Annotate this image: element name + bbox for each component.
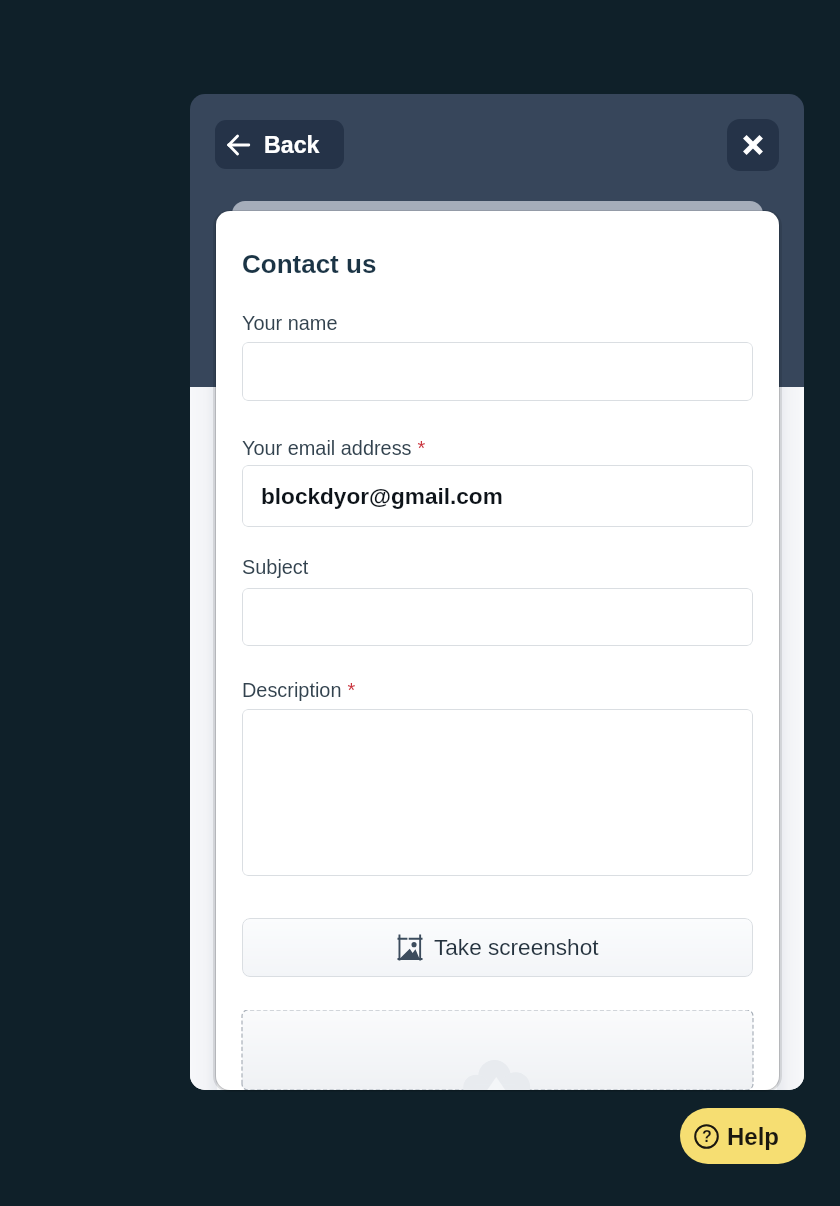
button[interactable]: ? <box>680 1108 806 1164</box>
button[interactable]: Subject <box>242 588 753 646</box>
button[interactable]: Add attachments: drag and drop files her… <box>242 1010 753 1090</box>
staticText: Your email address <box>242 437 412 459</box>
staticText: Help <box>727 1123 780 1150</box>
staticText: ? <box>702 1128 712 1146</box>
staticText: Back <box>264 132 320 158</box>
staticText: Contact us <box>242 249 377 278</box>
staticText: * <box>342 679 356 701</box>
staticText: Take screenshot <box>434 935 599 960</box>
staticText: Your name <box>242 312 338 334</box>
button[interactable]: Back <box>215 120 344 169</box>
button[interactable]: Description <box>242 709 753 876</box>
button[interactable]: Your name <box>242 342 753 401</box>
staticText: blockdyor@gmail.com <box>261 484 503 509</box>
button[interactable]: Close <box>727 119 779 171</box>
staticText: Description <box>242 679 342 701</box>
staticText: Subject <box>242 556 309 578</box>
button[interactable]: Take screenshot <box>242 918 753 977</box>
staticText: * <box>412 437 426 459</box>
button[interactable]: Your email address <box>242 465 753 527</box>
